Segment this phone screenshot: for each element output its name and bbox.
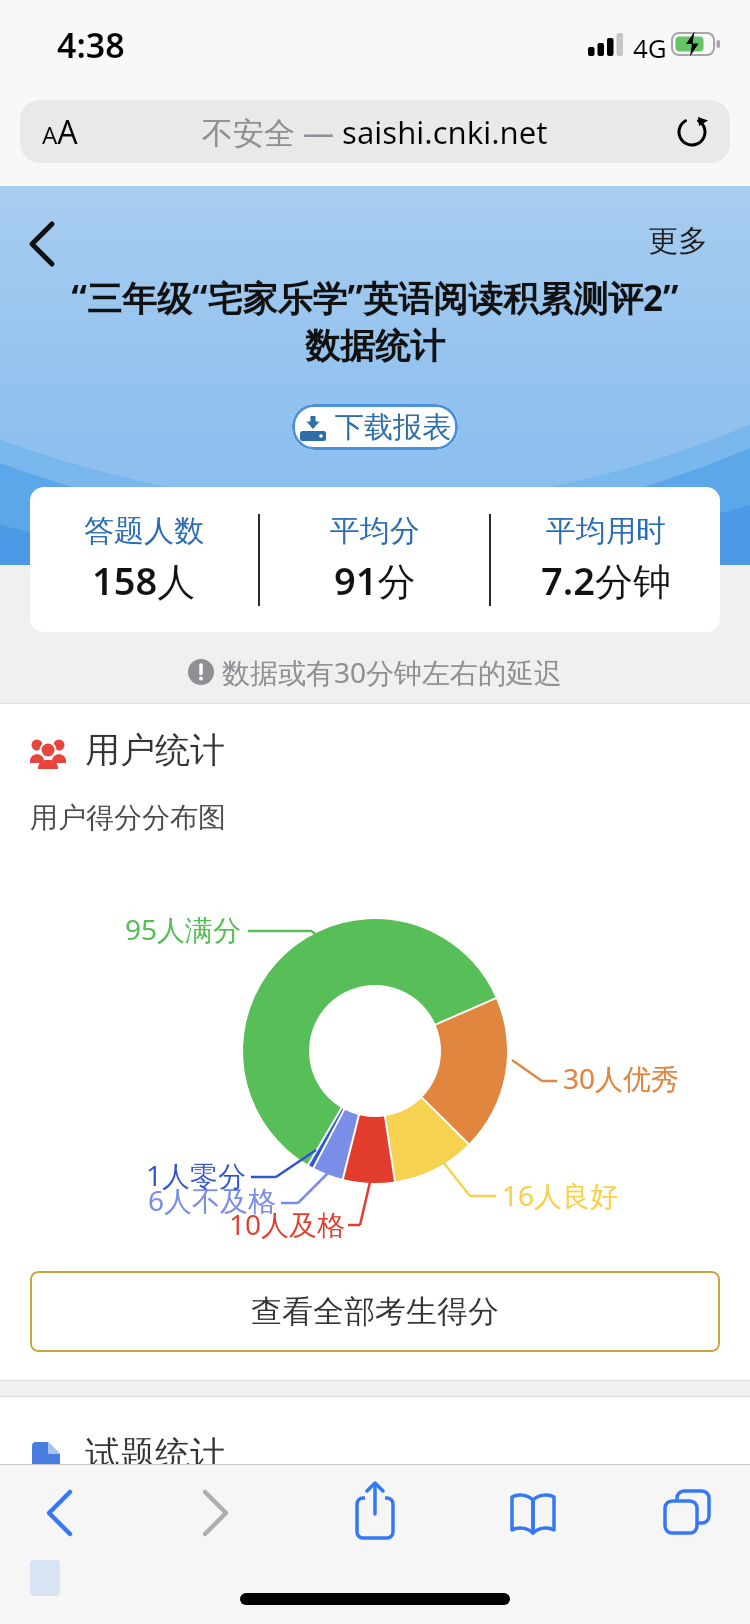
staticText: 平均分 — [330, 512, 420, 550]
staticText: 用户得分分布图 — [30, 800, 226, 835]
staticText: 30人优秀 — [563, 1059, 680, 1097]
staticText: 158人 — [92, 554, 196, 606]
staticText: 4:38 — [57, 22, 125, 68]
staticText: 试题统计 — [85, 1432, 225, 1476]
staticText: 用户统计 — [85, 728, 225, 772]
button[interactable]: 平均用时 — [491, 487, 720, 632]
button[interactable] — [18, 216, 74, 272]
staticText: AA — [42, 110, 78, 154]
button[interactable] — [507, 1486, 559, 1540]
button[interactable]: 查看全部考生得分 — [30, 1271, 720, 1352]
staticText: 4G — [633, 30, 667, 65]
button[interactable] — [660, 1486, 716, 1540]
staticText: 查看全部考生得分 — [251, 1292, 499, 1331]
staticText: 1人零分 — [146, 1156, 247, 1194]
button[interactable] — [36, 1486, 88, 1540]
staticText: 答题人数 — [84, 512, 204, 550]
button[interactable] — [187, 1486, 239, 1540]
staticText: “三年级“宅家乐学”英语阅读积累测评2” 数据统计 — [0, 274, 750, 368]
button[interactable]: 更多 — [648, 222, 708, 260]
staticText: 6人不及格 — [148, 1181, 277, 1219]
staticText: 更多 — [648, 222, 708, 260]
staticText: 95人满分 — [125, 910, 242, 948]
staticText: 不安全 — saishi.cnki.net — [202, 111, 548, 153]
staticText: 下载报表 — [335, 409, 451, 446]
button[interactable] — [349, 1480, 401, 1540]
button[interactable]: AA — [20, 100, 730, 163]
staticText: 数据或有30分钟左右的延迟 — [222, 653, 563, 691]
staticText: 平均用时 — [546, 512, 666, 550]
staticText: 91分 — [334, 554, 416, 606]
staticText: 16人良好 — [502, 1176, 619, 1214]
staticText: 10人及格 — [229, 1205, 346, 1243]
button[interactable]: 平均分 — [260, 487, 489, 632]
staticText: 7.2分钟 — [541, 554, 671, 606]
button[interactable]: 下载报表 — [292, 404, 458, 450]
button[interactable]: 答题人数 — [30, 487, 258, 632]
